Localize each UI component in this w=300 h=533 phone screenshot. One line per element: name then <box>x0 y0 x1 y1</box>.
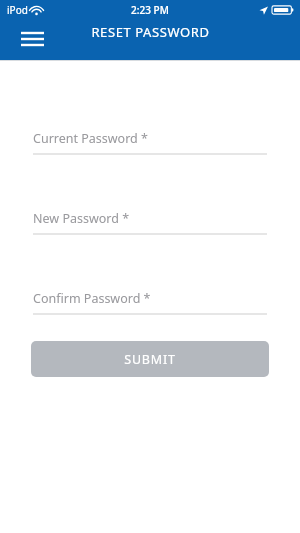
button[interactable]: Confirm Password * <box>33 290 267 315</box>
button[interactable]: New Password * <box>33 210 267 235</box>
staticText: Confirm Password * <box>33 290 151 307</box>
staticText: 2:23 PM <box>131 3 169 17</box>
button[interactable]: Current Password * <box>33 130 267 155</box>
staticText: New Password * <box>33 210 130 227</box>
staticText: Current Password * <box>33 130 148 147</box>
button[interactable]: Open navigation menu <box>13 25 45 55</box>
staticText: iPod <box>7 3 28 17</box>
button[interactable]: SUBMIT <box>31 341 269 377</box>
staticText: RESET PASSWORD <box>91 23 210 41</box>
staticText: SUBMIT <box>124 351 176 368</box>
